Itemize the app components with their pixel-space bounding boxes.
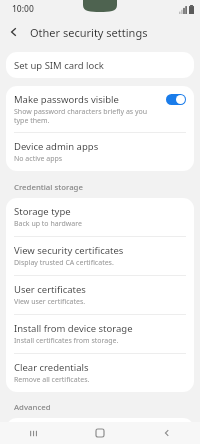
staticText: Install from device storage: [14, 322, 133, 335]
staticText: Device admin apps: [14, 140, 99, 153]
button[interactable]: Install from device storage: [6, 315, 194, 353]
staticText: Credential storage: [14, 182, 83, 193]
staticText: Storage type: [14, 205, 71, 218]
button[interactable]: User certificates: [6, 276, 194, 314]
button[interactable]: Device admin apps: [6, 133, 194, 171]
staticText: Back up to hardware: [14, 219, 82, 229]
staticText: Make passwords visible: [14, 93, 119, 106]
button[interactable]: View security certificates: [6, 237, 194, 275]
staticText: Clear credentials: [14, 361, 89, 374]
staticText: 10:00: [12, 3, 34, 15]
staticText: No active apps: [14, 154, 63, 164]
button[interactable]: Set up SIM card lock: [6, 52, 194, 78]
button[interactable]: Clear credentials: [6, 354, 194, 392]
staticText: Show password characters briefly as you …: [14, 107, 160, 125]
button[interactable]: Back: [133, 422, 200, 444]
button[interactable]: Storage type: [6, 198, 194, 236]
staticText: Install certificates from storage.: [14, 336, 119, 346]
button[interactable]: Back: [0, 18, 28, 46]
staticText: Other security settings: [30, 25, 148, 40]
staticText: User certificates: [14, 283, 86, 296]
button[interactable]: Home: [66, 422, 133, 444]
button[interactable]: Recent apps: [0, 422, 66, 444]
staticText: View security certificates: [14, 244, 124, 257]
staticText: Trust agents: [14, 425, 70, 437]
button[interactable]: Make passwords visible toggle: [166, 94, 186, 105]
staticText: View user certificates.: [14, 297, 86, 307]
staticText: Advanced: [14, 402, 51, 413]
button[interactable]: Make passwords visible: [6, 86, 194, 132]
staticText: Display trusted CA certificates.: [14, 258, 114, 268]
staticText: Set up SIM card lock: [14, 59, 104, 72]
staticText: Remove all certificates.: [14, 375, 90, 385]
button[interactable]: Trust agents: [6, 418, 194, 444]
